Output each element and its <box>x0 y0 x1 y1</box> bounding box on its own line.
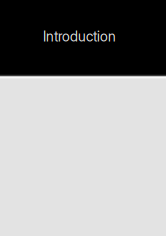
staticText: Introduction <box>43 28 116 45</box>
